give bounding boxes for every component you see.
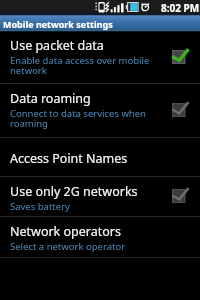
button[interactable]: Data roaming — [0, 84, 200, 137]
staticText: Select a network operator — [10, 240, 126, 253]
staticText: Enable data access over mobile network — [10, 54, 150, 77]
other: Unchecked — [172, 187, 189, 205]
button[interactable]: Use packet data — [0, 32, 200, 83]
staticText: Mobile network settings — [3, 18, 113, 30]
button[interactable]: Use only 2G networks — [0, 177, 200, 216]
staticText: Use only 2G networks — [10, 183, 138, 200]
staticText: Saves battery — [10, 200, 70, 213]
staticText: Connect to data services when roaming — [10, 107, 150, 130]
staticText: 8:02 PM — [161, 1, 200, 15]
staticText: Network operators — [10, 223, 121, 240]
staticText: Data roaming — [10, 90, 91, 107]
button[interactable]: Access Point Names — [0, 138, 200, 176]
other: Checked — [172, 48, 189, 66]
staticText: Use packet data — [10, 37, 104, 54]
staticText: Access Point Names — [10, 150, 128, 167]
button[interactable]: Network operators — [0, 217, 200, 257]
other: Unchecked — [172, 101, 189, 119]
